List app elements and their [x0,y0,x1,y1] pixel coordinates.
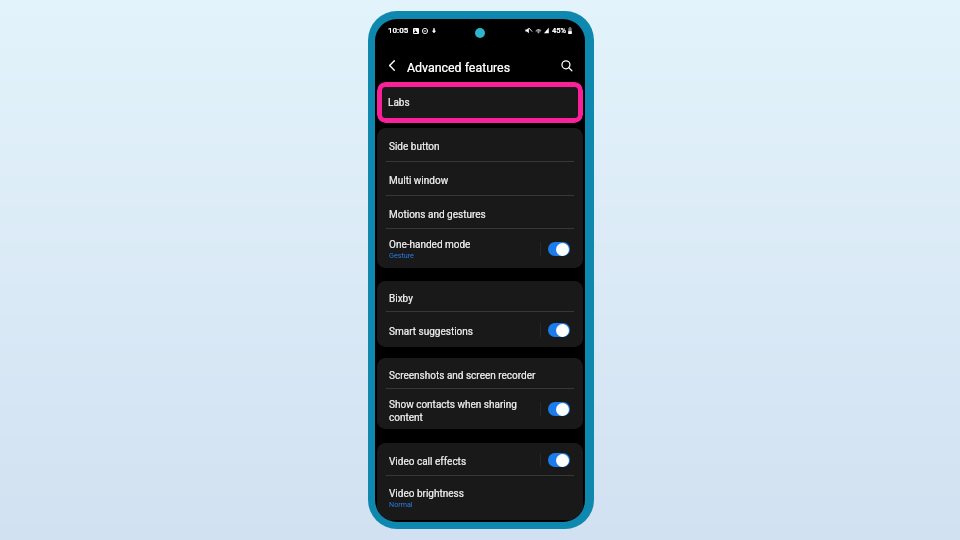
staticText: Show contacts when sharing content [389,399,517,423]
staticText: Video brightness [389,488,464,500]
staticText: Gesture [389,251,414,259]
button[interactable]: Toggle One-handed mode [548,242,570,256]
staticText: Smart suggestions [389,326,473,338]
staticText: Side button [389,141,440,153]
staticText: Labs [388,97,410,109]
staticText: One-handed mode [389,239,471,251]
button[interactable]: Toggle Show contacts when sharing conten… [548,402,570,416]
staticText: Advanced features [407,60,511,75]
button[interactable]: Smart suggestions [377,312,583,347]
button[interactable]: Search [554,56,578,80]
staticText: 10:05 [388,26,409,35]
button[interactable]: Video call effects [377,443,583,476]
button[interactable]: Toggle Video call effects [548,453,570,467]
button[interactable]: Show contacts when sharing content [377,389,583,429]
staticText: Motions and gestures [389,209,486,221]
button[interactable]: One-handed mode [377,229,583,268]
staticText: 45% [552,26,567,35]
button[interactable]: Video brightness [377,476,583,520]
button[interactable]: Back [380,56,404,80]
button[interactable]: Motions and gestures [377,196,583,229]
button[interactable]: Bixby [377,281,583,312]
button[interactable]: Toggle Smart suggestions [548,323,570,337]
staticText: Video call effects [389,456,467,468]
staticText: Bixby [389,293,413,305]
staticText: Multi window [389,175,449,187]
staticText: Normal [389,500,413,508]
button[interactable]: Screenshots and screen recorder [377,358,583,389]
button[interactable]: Multi window [377,162,583,196]
staticText: Screenshots and screen recorder [389,370,536,382]
button[interactable]: Labs [381,86,579,119]
button[interactable]: Side button [377,128,583,162]
